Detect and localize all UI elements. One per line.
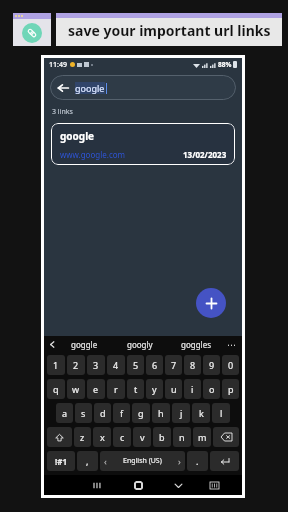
button[interactable]: y [146, 379, 163, 399]
staticText: 0 [228, 359, 234, 371]
staticText: d [100, 407, 106, 419]
staticText: a [62, 407, 68, 419]
staticText: 2 [73, 359, 79, 371]
button[interactable]: z [74, 427, 91, 447]
staticText: x [100, 431, 105, 443]
button[interactable]: goggles [168, 336, 224, 353]
staticText: t [134, 383, 138, 395]
button[interactable]: googly [112, 336, 168, 353]
staticText: o [209, 383, 215, 395]
staticText: n [179, 431, 185, 443]
staticText: i [191, 383, 194, 395]
staticText: k [199, 407, 204, 419]
button[interactable]: Recents [77, 475, 118, 495]
staticText: r [114, 383, 118, 395]
button[interactable]: 0 [222, 355, 239, 375]
button[interactable]: 9 [203, 355, 220, 375]
button[interactable]: 1 [47, 355, 65, 375]
button[interactable]: More [224, 336, 238, 353]
button[interactable]: !#1 [47, 451, 75, 471]
staticText: 88% [218, 60, 232, 69]
staticText: !#1 [55, 456, 67, 467]
staticText: English (US) [123, 456, 162, 466]
staticText: › [178, 455, 181, 467]
staticText: j [180, 407, 183, 419]
button[interactable]: q [47, 379, 65, 399]
button[interactable]: 8 [184, 355, 201, 375]
staticText: l [220, 407, 223, 419]
staticText: goggle [71, 339, 98, 350]
staticText: googly [127, 339, 153, 350]
staticText: 1 [53, 359, 59, 371]
staticText: 8 [190, 359, 196, 371]
button[interactable]: Shift [47, 427, 72, 447]
button[interactable]: u [165, 379, 182, 399]
button[interactable]: d [94, 403, 111, 423]
staticText: 11:49 [49, 60, 67, 70]
button[interactable]: 7 [165, 355, 182, 375]
button[interactable]: Hide keyboard [198, 475, 230, 495]
staticText: save your important url links [68, 21, 271, 40]
button[interactable]: n [173, 427, 191, 447]
staticText: c [120, 431, 125, 443]
button[interactable]: 2 [67, 355, 85, 375]
button[interactable]: 5 [127, 355, 144, 375]
button[interactable]: h [152, 403, 170, 423]
staticText: ⋯ [227, 340, 236, 350]
staticText: y [152, 383, 157, 395]
button[interactable]: l [212, 403, 230, 423]
button[interactable]: o [203, 379, 220, 399]
staticText: 13/02/2023 [183, 149, 227, 160]
button[interactable]: goggle [57, 336, 112, 353]
button[interactable]: g [132, 403, 150, 423]
staticText: 4 [113, 359, 119, 371]
staticText: p [228, 383, 234, 395]
button[interactable]: Enter [210, 451, 239, 471]
button[interactable]: Backspace [213, 427, 239, 447]
button[interactable]: f [113, 403, 130, 423]
staticText: q [53, 383, 59, 395]
staticText: v [140, 431, 145, 443]
button[interactable]: t [127, 379, 144, 399]
button[interactable]: Previous [48, 340, 57, 349]
button[interactable]: j [172, 403, 190, 423]
button[interactable]: ‹ [100, 451, 185, 471]
button[interactable]: s [75, 403, 92, 423]
staticText: m [198, 431, 207, 443]
button[interactable]: k [192, 403, 210, 423]
button[interactable]: c [113, 427, 131, 447]
staticText: google [75, 82, 105, 94]
button[interactable]: , [77, 451, 98, 471]
button[interactable]: e [87, 379, 105, 399]
staticText: e [93, 383, 99, 395]
button[interactable]: a [56, 403, 73, 423]
button[interactable]: v [133, 427, 151, 447]
button[interactable]: 6 [146, 355, 163, 375]
button[interactable]: p [222, 379, 239, 399]
staticText: g [138, 407, 144, 419]
button[interactable]: Add link [196, 288, 226, 318]
staticText: 3 links [52, 107, 73, 117]
staticText: 6 [152, 359, 158, 371]
button[interactable]: 4 [107, 355, 125, 375]
button[interactable]: m [193, 427, 211, 447]
button[interactable]: w [67, 379, 85, 399]
staticText: 9 [209, 359, 215, 371]
button[interactable]: r [107, 379, 125, 399]
button[interactable]: google [51, 123, 235, 165]
button[interactable]: Back [50, 75, 236, 100]
button[interactable]: Back [158, 475, 198, 495]
staticText: google [60, 129, 95, 143]
staticText: u [171, 383, 177, 395]
button[interactable]: Home [118, 475, 158, 495]
staticText: h [158, 407, 164, 419]
staticText: w [72, 383, 80, 395]
button[interactable]: i [184, 379, 201, 399]
button[interactable]: . [187, 451, 208, 471]
button[interactable]: x [93, 427, 111, 447]
other: Back [57, 82, 69, 94]
button[interactable]: 3 [87, 355, 105, 375]
staticText: , [86, 455, 89, 467]
staticText: goggles [181, 339, 212, 350]
button[interactable]: b [153, 427, 171, 447]
